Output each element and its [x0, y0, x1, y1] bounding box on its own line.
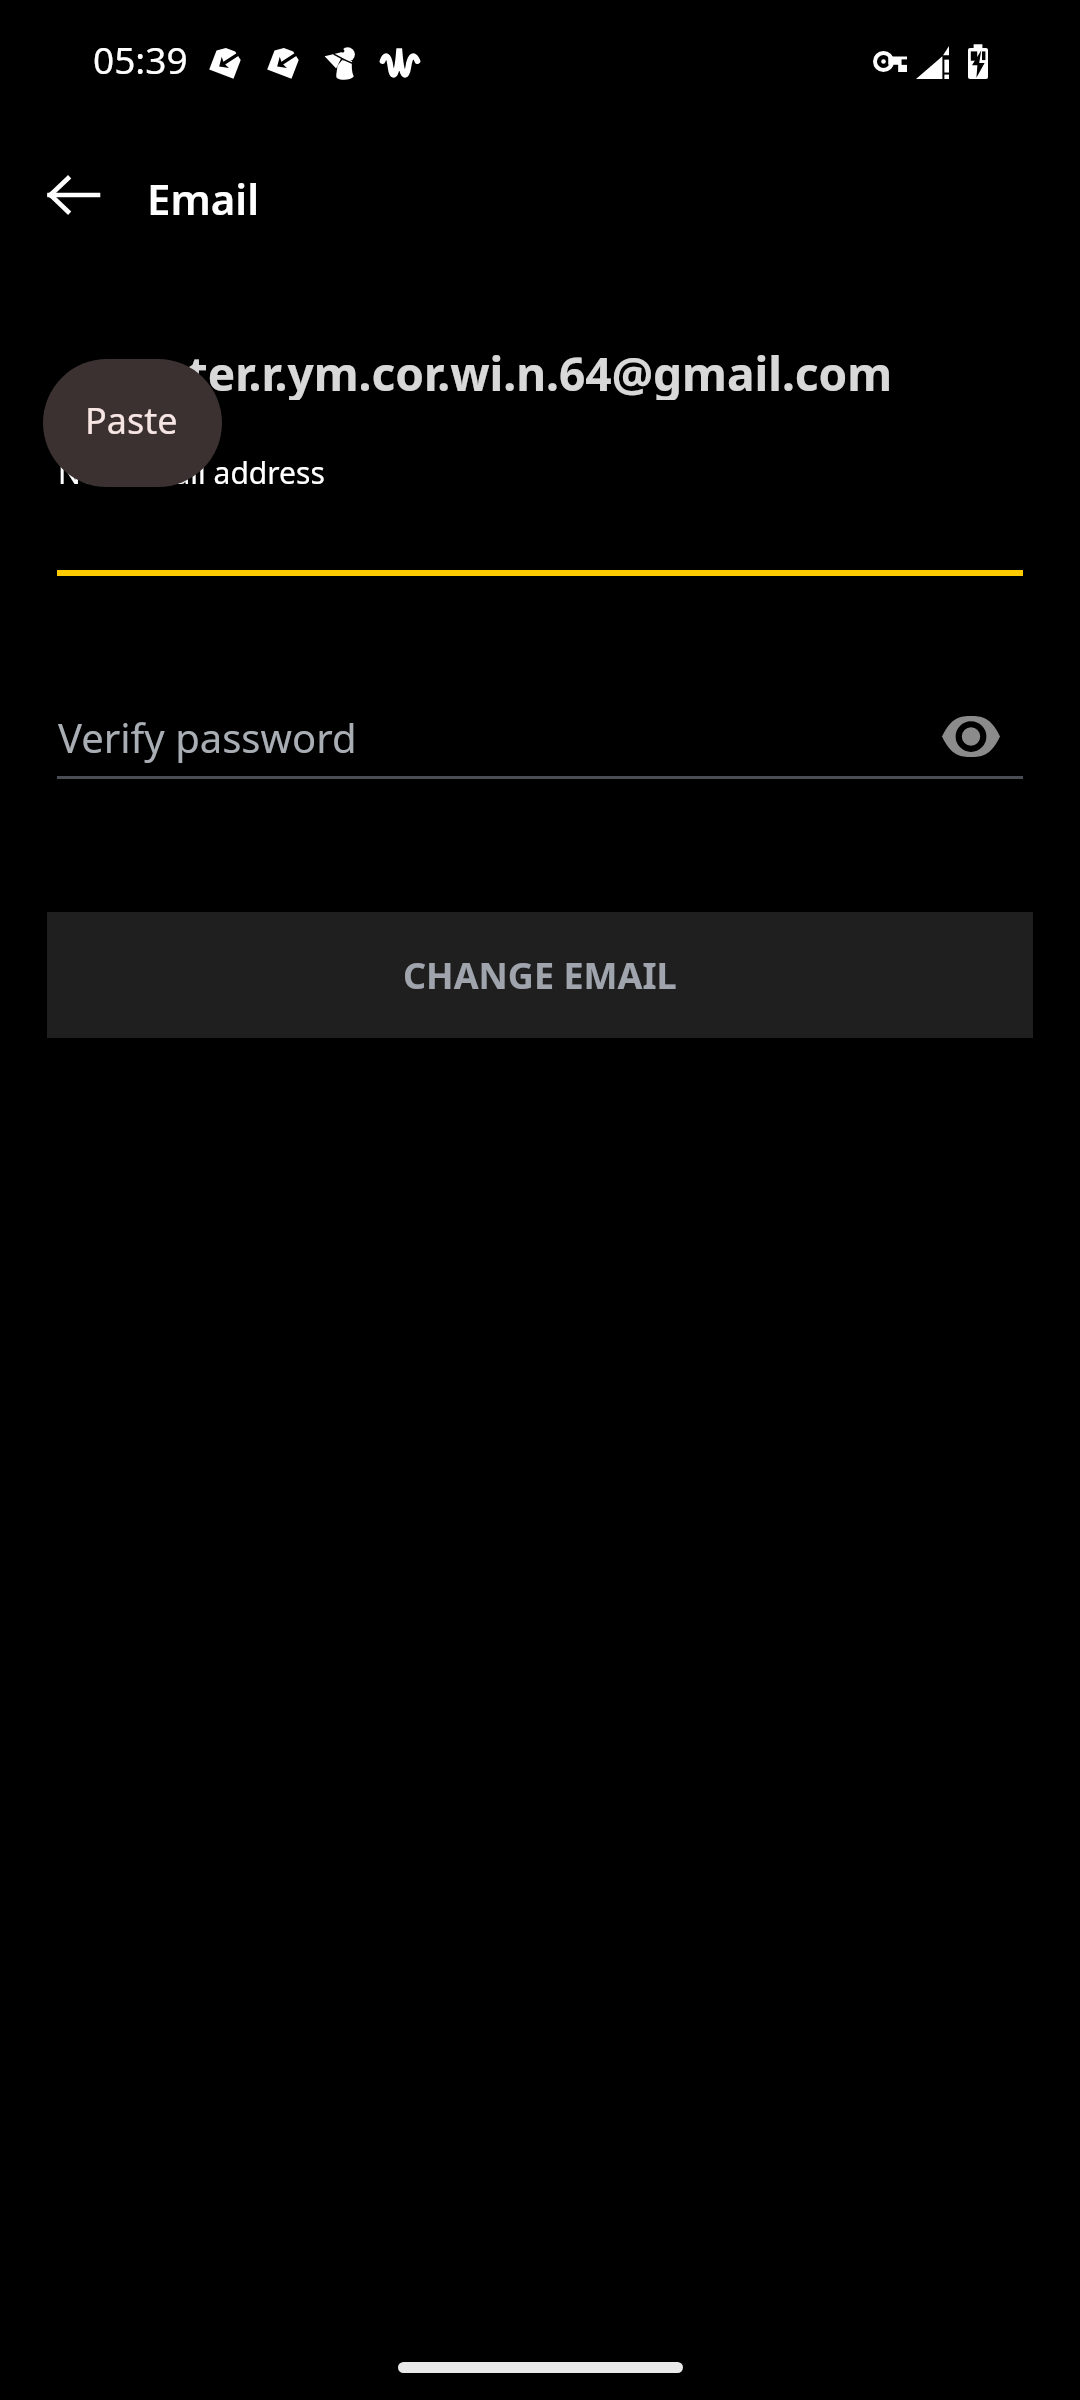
staticText: 05:39	[93, 34, 188, 84]
button[interactable]: Paste	[43, 359, 222, 487]
staticText: CHANGE EMAIL	[403, 951, 677, 1000]
staticText: New email address	[58, 452, 325, 493]
staticText: Email	[147, 170, 260, 227]
button[interactable]: Back	[25, 147, 121, 243]
staticText: Paste	[85, 396, 178, 445]
button[interactable]: CHANGE EMAIL	[47, 912, 1033, 1038]
staticText: ter.r.ym.cor.wi.n.64@gmail.com	[57, 342, 1023, 400]
staticText: Verify password	[58, 710, 357, 764]
button[interactable]: Show password	[921, 686, 1021, 786]
